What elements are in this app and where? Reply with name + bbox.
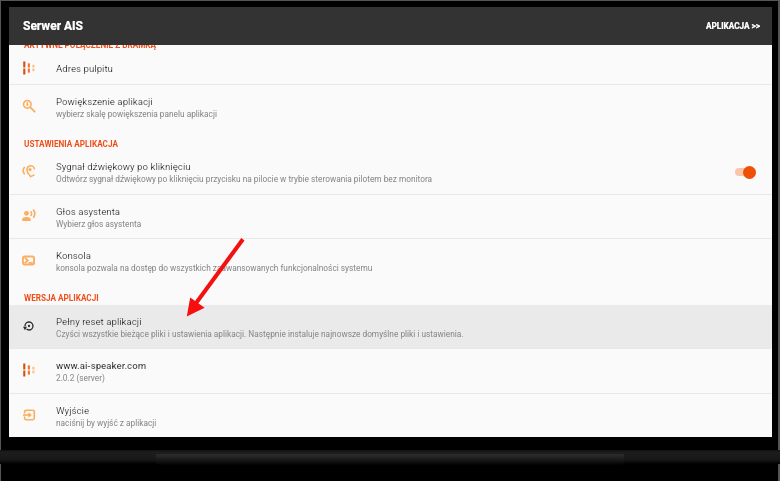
staticText: Pełny reset aplikacji <box>56 316 142 327</box>
staticText: Wybierz głos asystenta <box>56 219 142 229</box>
staticText: Powiększenie aplikacji <box>56 96 153 107</box>
other: Sygnał dźwiękowy <box>734 164 758 180</box>
button[interactable]: Adres pulpitu <box>9 53 772 84</box>
button[interactable]: Sygnał dźwiękowy po kliknięciu <box>9 150 772 194</box>
staticText: Czyści wszystkie bieżące pliki i ustawie… <box>56 329 464 339</box>
staticText: Odtwórz sygnał dźwiękowy po kliknięciu p… <box>56 174 433 184</box>
staticText: Głos asystenta <box>56 206 121 217</box>
staticText: WERSJA APLIKACJI <box>24 293 99 303</box>
staticText: Wyjście <box>56 405 90 416</box>
button[interactable]: APLIKACJA >> <box>695 12 772 40</box>
staticText: Sygnał dźwiękowy po kliknięciu <box>56 161 191 172</box>
button[interactable]: Głos asystenta <box>9 195 772 238</box>
staticText: konsola pozwala na dostęp do wszystkich … <box>56 263 373 273</box>
button[interactable]: Konsola <box>9 239 772 283</box>
staticText: 2.0.2 (server) <box>56 373 105 383</box>
staticText: naciśnij by wyjść z aplikacji <box>56 418 157 428</box>
staticText: www.ai-speaker.com <box>56 360 147 371</box>
staticText: Serwer AIS <box>23 19 83 33</box>
staticText: APLIKACJA >> <box>706 21 761 31</box>
button[interactable]: www.ai-speaker.com <box>9 349 772 393</box>
staticText: Konsola <box>56 250 91 261</box>
button[interactable]: Powiększenie aplikacji <box>9 85 772 129</box>
button[interactable]: Pełny reset aplikacji <box>9 305 772 348</box>
staticText: AKTYWNE POŁĄCZENIE Z BRAMKĄ <box>24 40 157 50</box>
staticText: USTAWIENIA APLIKACJA <box>24 139 118 149</box>
staticText: wybierz skalę powiększenia panelu aplika… <box>56 109 217 119</box>
button[interactable]: Wyjście <box>9 394 772 437</box>
staticText: Adres pulpitu <box>56 63 113 74</box>
